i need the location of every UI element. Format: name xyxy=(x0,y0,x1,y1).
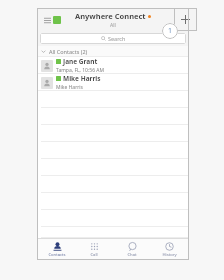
button[interactable]: Anywhere Connect xyxy=(75,11,151,29)
button[interactable]: Contacts xyxy=(40,239,74,260)
staticText: Tampa, FL, 10:56 AM xyxy=(56,67,105,74)
staticText: Contacts xyxy=(48,252,66,258)
staticText: Anywhere Connect xyxy=(75,11,146,21)
staticText: Call xyxy=(90,252,98,258)
button[interactable]: Chat xyxy=(115,239,149,260)
button[interactable]: History xyxy=(152,239,186,260)
staticText: Mike Harris xyxy=(56,84,83,91)
button[interactable]: Jane Grant xyxy=(37,57,189,74)
staticText: All Contacts (2) xyxy=(49,48,88,55)
staticText: History xyxy=(162,252,177,258)
button[interactable]: Add contact xyxy=(174,8,197,31)
staticText: 1 xyxy=(168,26,173,36)
staticText: Mike Harris xyxy=(63,74,101,83)
button[interactable]: Menu xyxy=(42,14,63,26)
button[interactable]: Call xyxy=(77,239,111,260)
button[interactable]: Mike Harris xyxy=(37,74,189,91)
staticText: All xyxy=(110,22,116,29)
button[interactable]: Search xyxy=(40,33,186,44)
button[interactable]: All Contacts (2) xyxy=(37,46,189,57)
staticText: Jane Grant xyxy=(63,57,98,66)
staticText: Chat xyxy=(127,252,137,258)
staticText: Search xyxy=(108,35,126,42)
